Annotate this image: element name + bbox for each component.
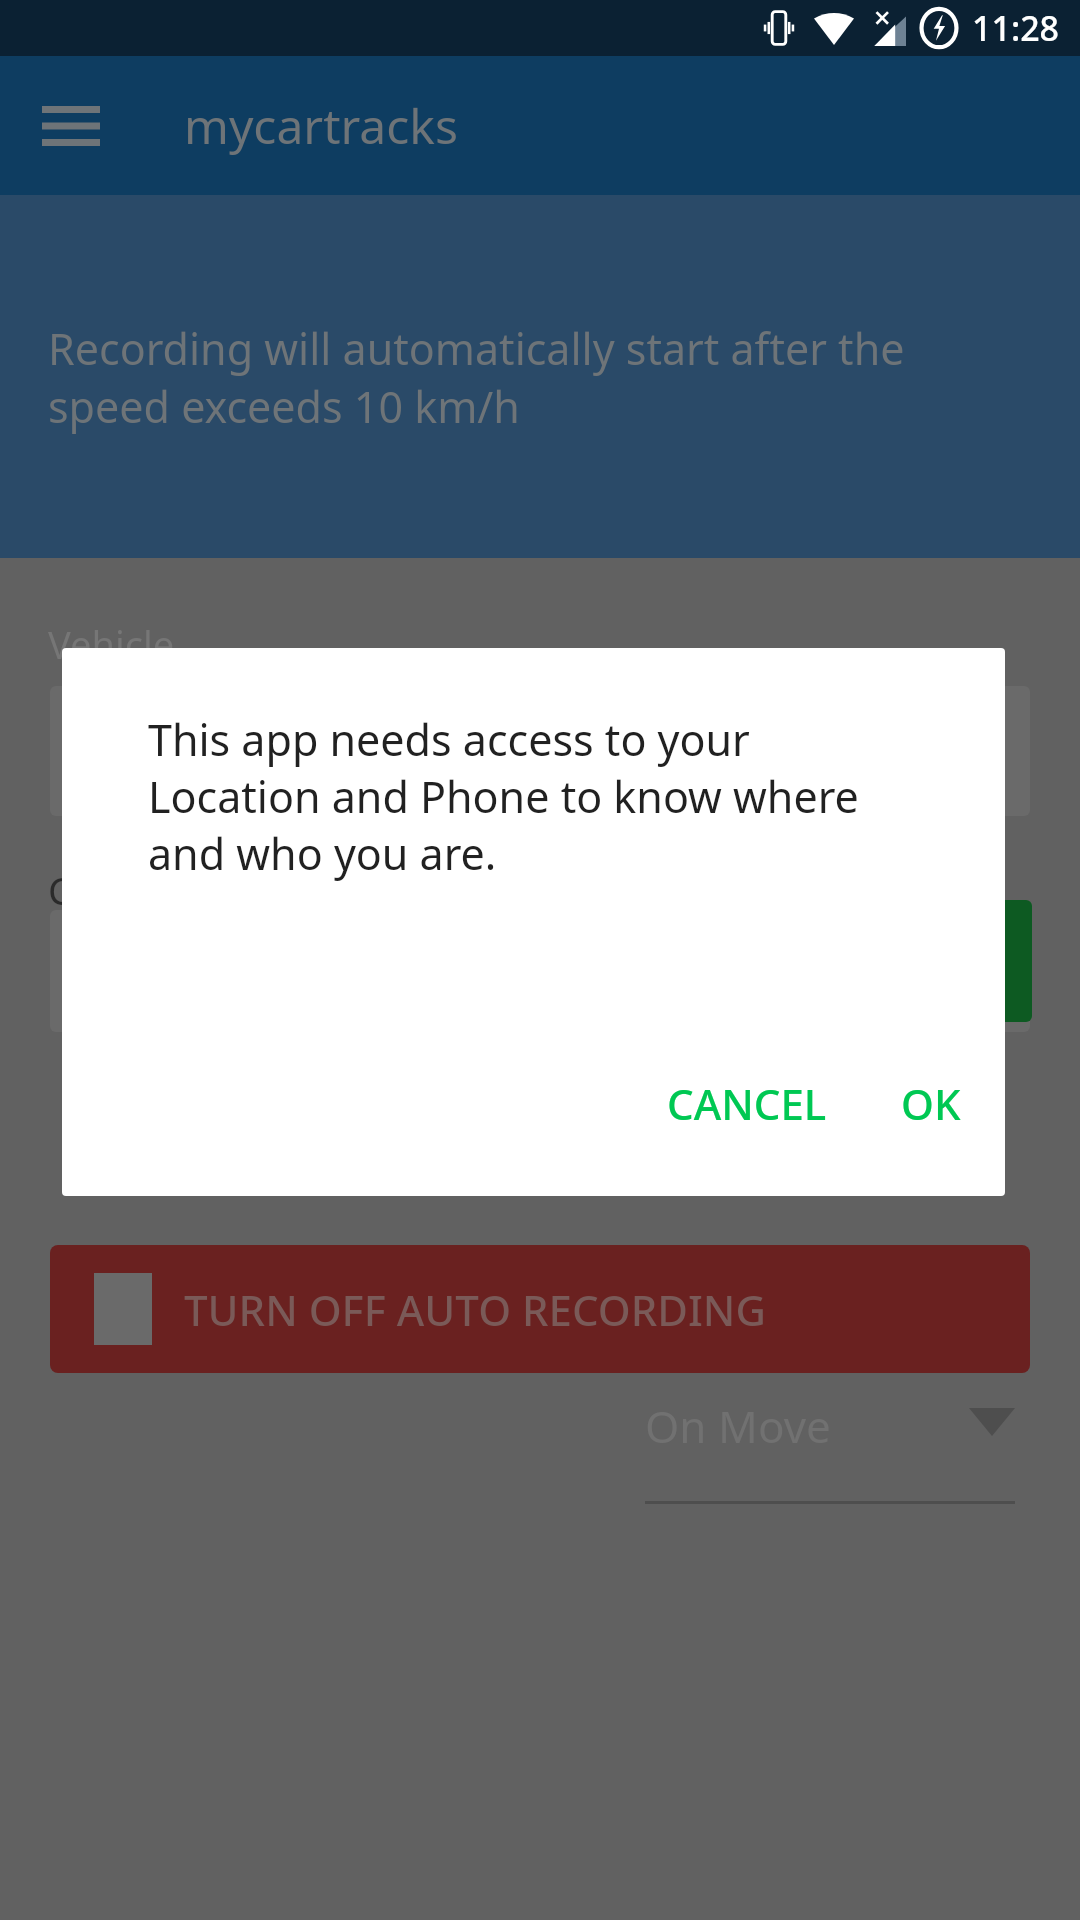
staticText: This app needs access to your Location a… [148, 710, 918, 882]
staticText: 11:28 [972, 5, 1060, 51]
staticText: mycartracks [184, 93, 458, 158]
staticText: Vehicle [48, 618, 175, 670]
button[interactable]: CANCEL [643, 1059, 851, 1148]
staticText: Ca [48, 864, 94, 916]
staticText: Ford Focus - Company car [180, 721, 714, 781]
staticText: CANCEL [667, 1075, 827, 1132]
button[interactable]: Ford Focus - Company car [50, 686, 1030, 816]
staticText: Recording will automatically start after… [48, 319, 1000, 435]
button[interactable] [50, 910, 1030, 1032]
button[interactable] [780, 900, 1032, 1022]
staticText: TURN OFF AUTO RECORDING [184, 1281, 766, 1338]
button[interactable]: Open navigation menu [30, 85, 112, 167]
staticText: OK [901, 1075, 961, 1132]
button[interactable]: OK [877, 1059, 985, 1148]
button[interactable]: TURN OFF AUTO RECORDING [50, 1245, 1030, 1373]
button[interactable]: On Move [645, 1396, 1015, 1504]
staticText: On Move [645, 1396, 831, 1456]
